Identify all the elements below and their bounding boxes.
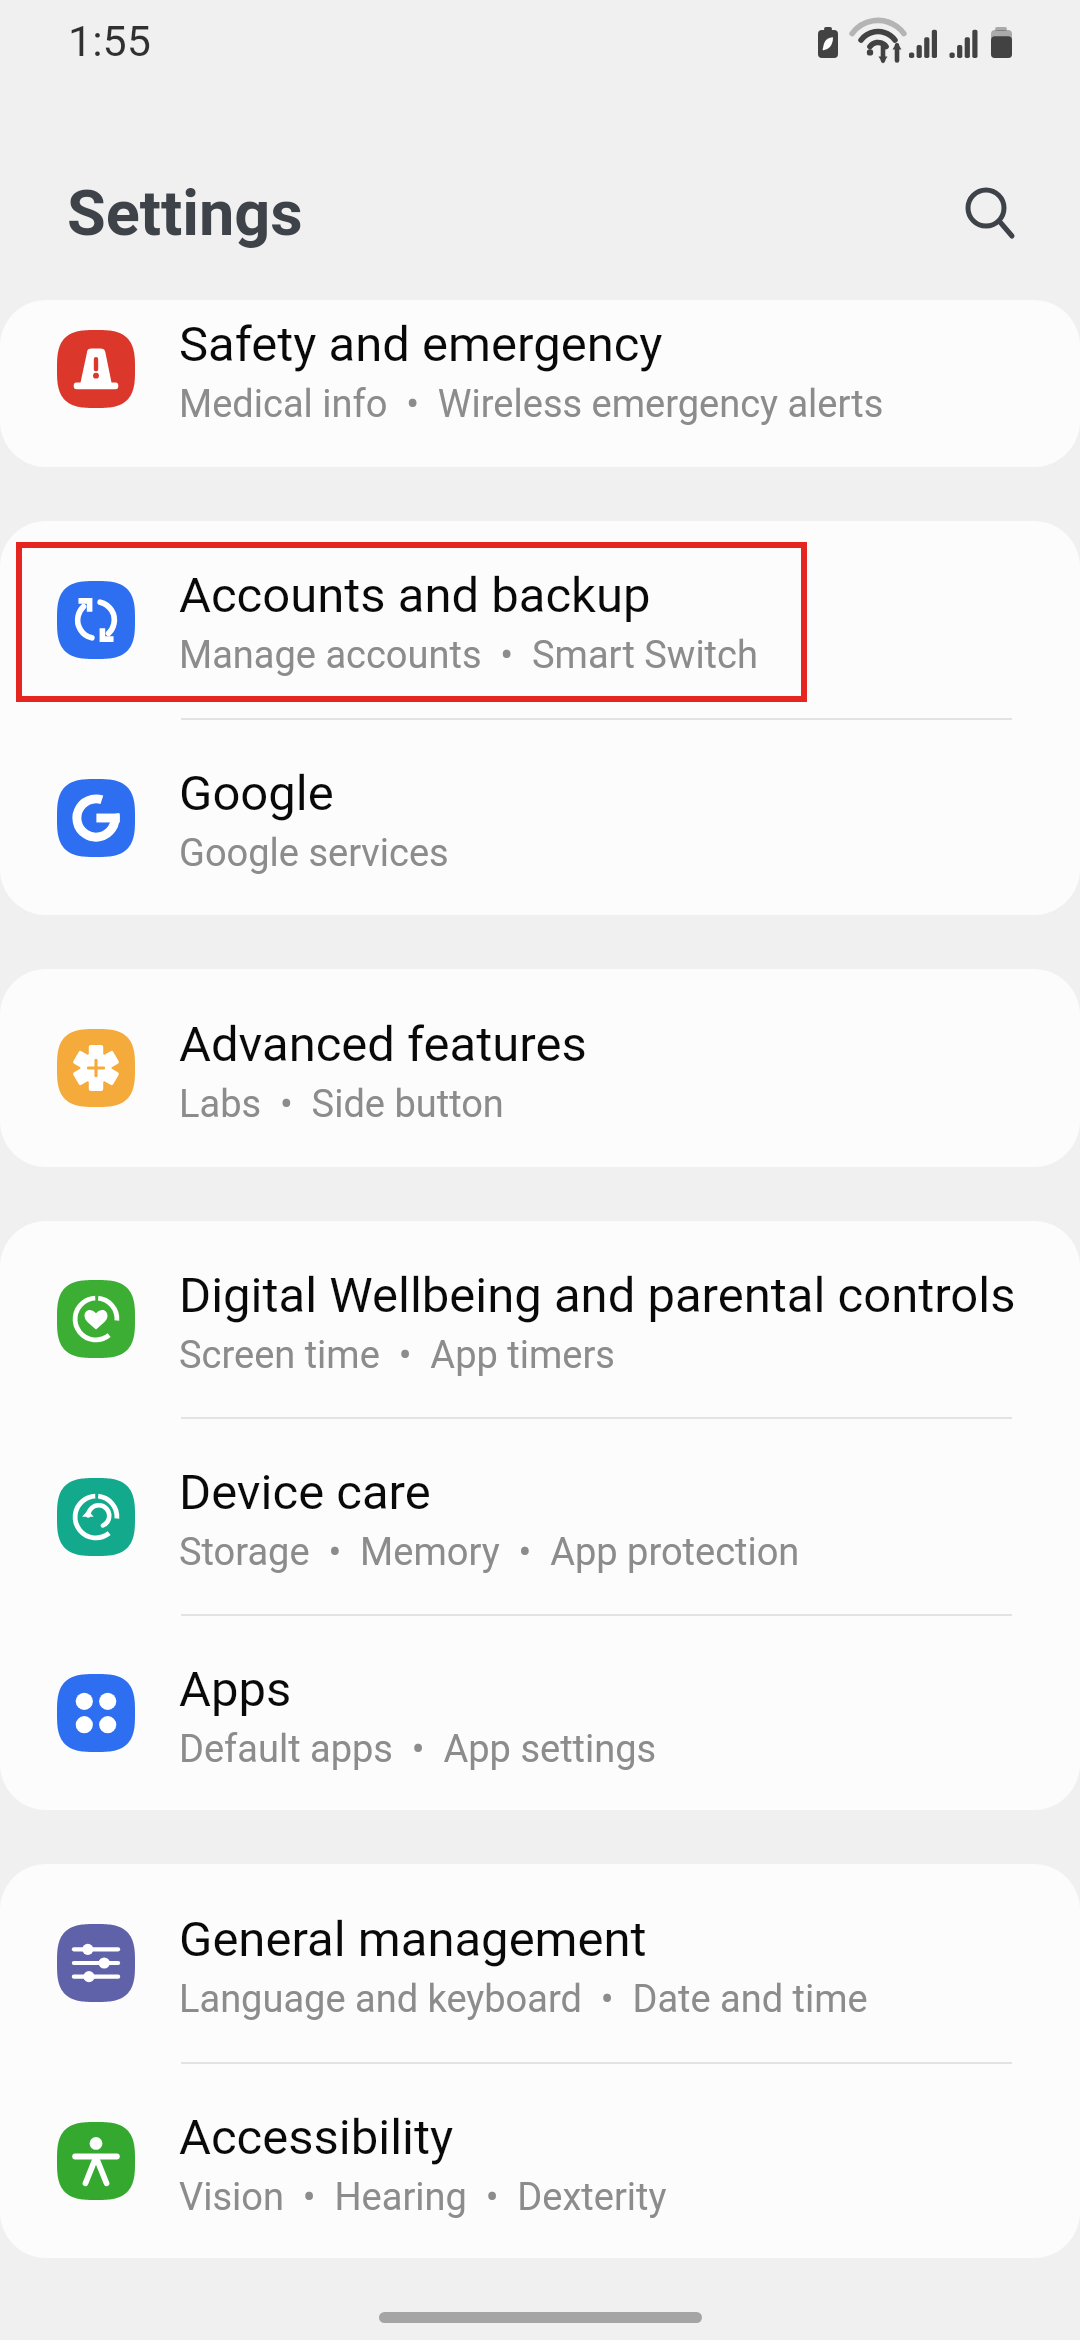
staticText: Vision • Hearing • Dexterity [179,2175,667,2220]
button[interactable]: Google [0,720,1080,915]
staticText: Google [179,765,334,822]
staticText: Labs • Side button [179,1082,504,1127]
staticText: Manage accounts • Smart Switch [179,633,758,678]
staticText: Medical info • Wireless emergency alerts [179,382,884,427]
staticText: Google services [179,831,449,876]
staticText: Default apps • App settings [179,1727,657,1772]
button[interactable]: Search [938,160,1034,256]
staticText: Safety and emergency [179,316,663,373]
staticText: Accessibility [179,2109,454,2166]
staticText: 1:55 [68,16,151,66]
staticText: Digital Wellbeing and parental controls [179,1267,1016,1324]
staticText: Settings [67,177,303,251]
button[interactable]: Digital Wellbeing and parental controls [0,1221,1080,1417]
button[interactable]: Apps [0,1616,1080,1810]
staticText: Language and keyboard • Date and time [179,1977,868,2022]
staticText: Screen time • App timers [179,1333,615,1378]
staticText: General management [179,1911,647,1968]
button[interactable]: Advanced features [0,969,1080,1167]
staticText: Advanced features [179,1016,587,1073]
staticText: Device care [179,1464,431,1521]
button[interactable]: Safety and emergency [0,300,1080,467]
button[interactable]: Accessibility [0,2064,1080,2258]
button[interactable]: Device care [0,1419,1080,1614]
staticText: Apps [179,1661,292,1718]
staticText: Accounts and backup [179,567,651,624]
button[interactable]: Accounts and backup [0,521,1080,718]
staticText: Storage • Memory • App protection [179,1530,800,1575]
button[interactable]: General management [0,1864,1080,2062]
